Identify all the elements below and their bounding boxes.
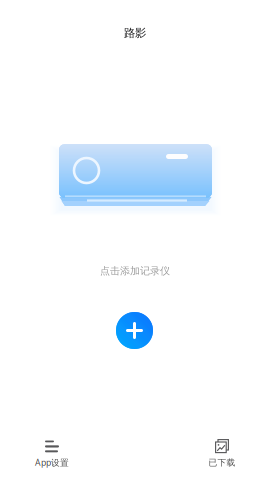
button[interactable]: App设置 — [32, 436, 72, 472]
staticText: 路影 — [124, 26, 146, 40]
staticText: 已下载 — [208, 457, 235, 468]
button[interactable]: 添加记录仪 — [116, 312, 153, 349]
staticText: App设置 — [35, 457, 69, 468]
button[interactable]: 已下载 — [202, 436, 242, 472]
staticText: 点击添加记录仪 — [100, 265, 170, 277]
